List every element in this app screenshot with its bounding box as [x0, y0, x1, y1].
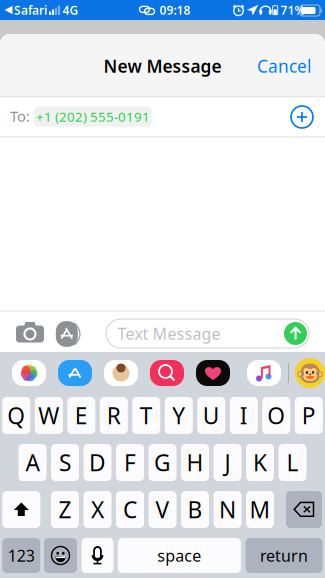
- staticText: C: [123, 494, 137, 524]
- staticText: P: [302, 400, 316, 430]
- button[interactable]: J: [213, 444, 241, 481]
- staticText: G: [154, 447, 171, 477]
- staticText: Cancel: [257, 54, 311, 77]
- button[interactable]: Cancel: [252, 50, 316, 82]
- staticText: space: [157, 545, 201, 566]
- button[interactable]: [81, 538, 113, 573]
- button[interactable]: Fitness: [196, 360, 230, 386]
- button[interactable]: Camera: [16, 321, 44, 343]
- button[interactable]: Send: [284, 322, 307, 345]
- button[interactable]: App Store: [58, 360, 92, 386]
- button[interactable]: X: [83, 491, 111, 528]
- button[interactable]: S: [51, 444, 79, 481]
- button[interactable]: Photos: [12, 360, 46, 386]
- button[interactable]: Add contact: [291, 106, 313, 128]
- button[interactable]: M: [246, 491, 274, 528]
- button[interactable]: C: [116, 491, 144, 528]
- staticText: Safari: [14, 2, 47, 18]
- staticText: J: [224, 447, 230, 477]
- staticText: 09:18: [159, 2, 190, 18]
- button[interactable]: B: [181, 491, 209, 528]
- button[interactable]: +1 (202) 555-0191: [34, 106, 152, 126]
- button[interactable]: space: [118, 538, 241, 573]
- button[interactable]: H: [181, 444, 209, 481]
- staticText: To:: [10, 106, 30, 126]
- button[interactable]: G: [148, 444, 176, 481]
- staticText: X: [91, 494, 104, 524]
- button[interactable]: A: [18, 444, 46, 481]
- button[interactable]: F: [116, 444, 144, 481]
- button[interactable]: Emoji: [295, 358, 325, 388]
- button[interactable]: K: [246, 444, 274, 481]
- button[interactable]: I: [230, 397, 258, 434]
- button[interactable]: Y: [165, 397, 193, 434]
- staticText: S: [59, 447, 71, 477]
- staticText: 🐵: [296, 360, 324, 386]
- staticText: +1 (202) 555-0191: [36, 108, 150, 125]
- button[interactable]: L: [278, 444, 306, 481]
- button[interactable]: Q: [2, 397, 30, 434]
- staticText: Y: [172, 400, 185, 430]
- button[interactable]: E: [67, 397, 95, 434]
- staticText: D: [89, 447, 106, 477]
- button[interactable]: Music: [247, 360, 281, 386]
- staticText: New Message: [103, 54, 221, 77]
- staticText: L: [286, 447, 298, 477]
- button[interactable]: Z: [51, 491, 79, 528]
- button[interactable]: Images: [150, 360, 184, 386]
- staticText: R: [107, 400, 121, 430]
- staticText: 123: [8, 545, 35, 566]
- staticText: Z: [58, 494, 71, 524]
- button[interactable]: V: [148, 491, 176, 528]
- staticText: U: [203, 400, 220, 430]
- staticText: O: [267, 400, 285, 430]
- staticText: I: [240, 400, 248, 430]
- staticText: V: [155, 494, 169, 524]
- button[interactable]: R: [100, 397, 128, 434]
- staticText: return: [260, 545, 308, 566]
- button[interactable]: Memoji: [104, 360, 138, 386]
- staticText: N: [219, 494, 236, 524]
- button[interactable]: O: [262, 397, 290, 434]
- button[interactable]: D: [83, 444, 111, 481]
- staticText: H: [186, 447, 203, 477]
- staticText: Text Message: [117, 323, 220, 344]
- staticText: M: [249, 494, 270, 524]
- button[interactable]: W: [35, 397, 63, 434]
- staticText: 4G: [62, 2, 78, 18]
- button[interactable]: [286, 491, 322, 528]
- button[interactable]: P: [295, 397, 323, 434]
- button[interactable]: App Store: [56, 320, 84, 348]
- staticText: A: [25, 447, 39, 477]
- staticText: W: [38, 400, 59, 430]
- button[interactable]: 123: [2, 538, 40, 573]
- staticText: T: [140, 400, 153, 430]
- staticText: B: [187, 494, 202, 524]
- staticText: K: [253, 447, 267, 477]
- staticText: F: [124, 447, 136, 477]
- button[interactable]: U: [197, 397, 225, 434]
- staticText: Q: [7, 400, 25, 430]
- staticText: 71%: [280, 2, 305, 18]
- button[interactable]: N: [213, 491, 241, 528]
- button[interactable]: [2, 491, 40, 528]
- button[interactable]: [44, 538, 77, 573]
- button[interactable]: return: [245, 538, 322, 573]
- staticText: E: [75, 400, 88, 430]
- button[interactable]: T: [132, 397, 160, 434]
